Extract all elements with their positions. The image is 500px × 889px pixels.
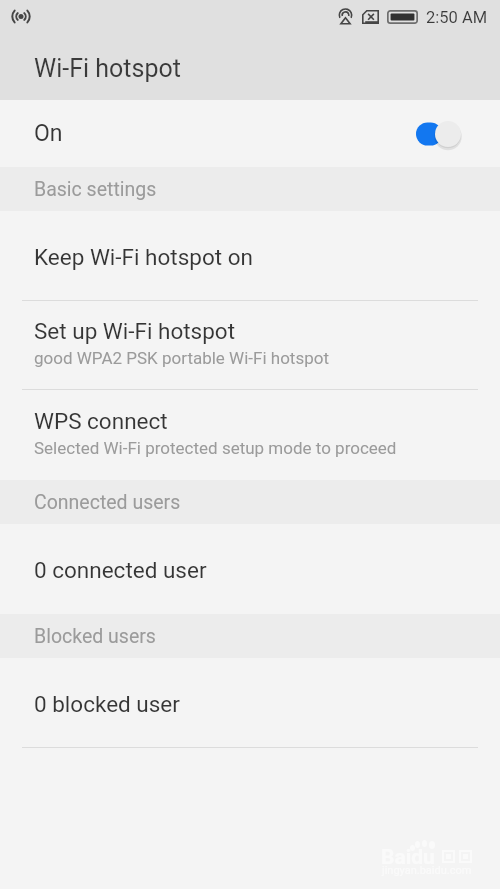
other: Portable hotspot [338, 8, 353, 25]
staticText: 0 connected user [34, 557, 207, 583]
staticText: On [34, 120, 63, 147]
staticText: Wi-Fi hotspot [34, 54, 181, 83]
staticText: 0 blocked user [34, 691, 180, 717]
other: Battery full [387, 10, 418, 24]
button[interactable]: 0 blocked user [0, 658, 500, 747]
button[interactable]: Keep Wi-Fi hotspot on [0, 211, 500, 300]
other: Hotspot active [11, 6, 31, 27]
staticText: Blocked users [34, 625, 156, 648]
button[interactable]: Set up Wi-Fi hotspot [0, 300, 500, 389]
staticText: Set up Wi-Fi hotspot [34, 318, 236, 344]
other: No SIM card [362, 10, 379, 24]
staticText: good WPA2 PSK portable Wi-Fi hotspot [34, 348, 329, 368]
staticText: Selected Wi-Fi protected setup mode to p… [34, 438, 397, 458]
staticText: Keep Wi-Fi hotspot on [34, 244, 253, 270]
button[interactable]: Toggle Wi-Fi hotspot [416, 119, 461, 149]
staticText: 2:50 AM [426, 8, 488, 27]
button[interactable]: 0 connected user [0, 524, 500, 614]
button[interactable]: On [0, 100, 500, 167]
button[interactable]: WPS connect [0, 389, 500, 480]
staticText: Basic settings [34, 178, 157, 201]
staticText: Connected users [34, 491, 181, 514]
staticText: WPS connect [34, 408, 168, 434]
